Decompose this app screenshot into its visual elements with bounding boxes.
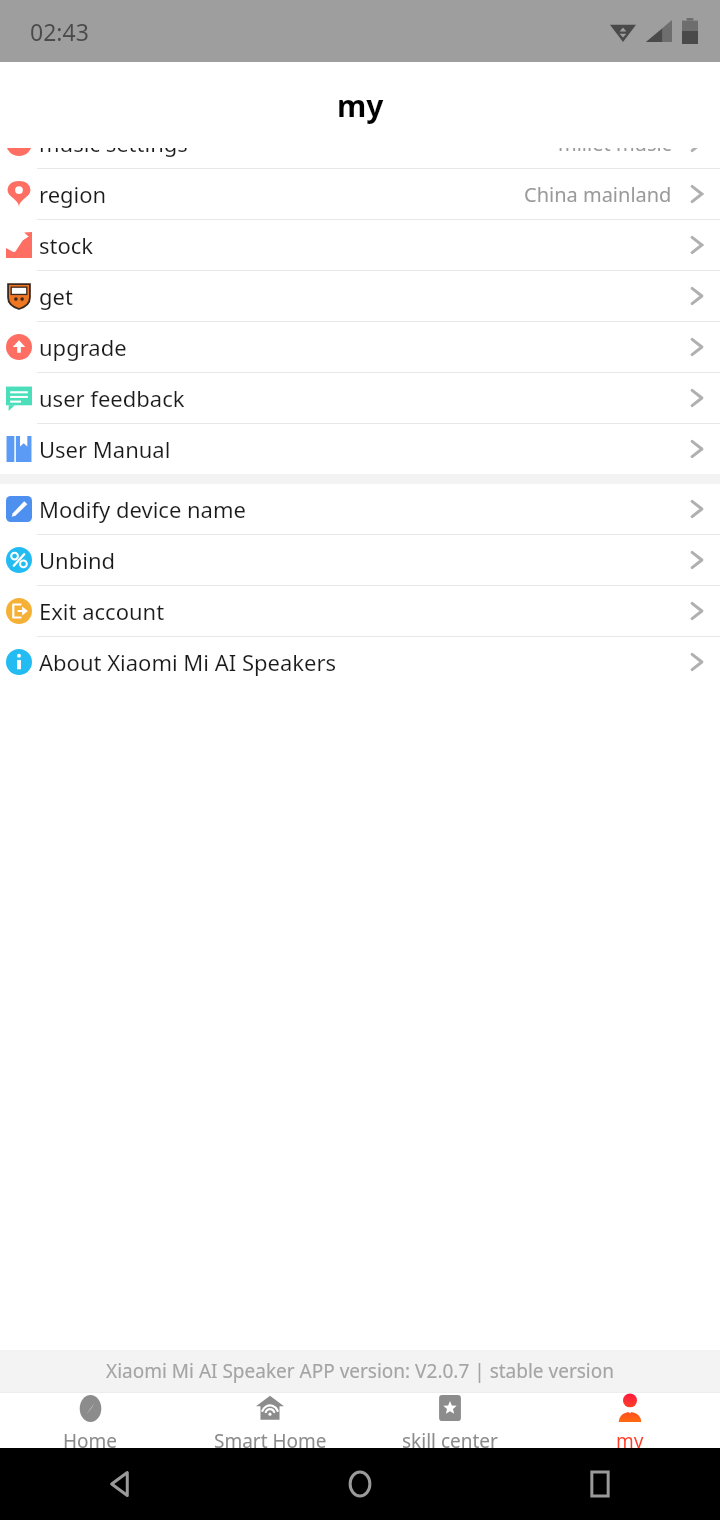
- staticText: my: [616, 1428, 644, 1448]
- button[interactable]: my: [540, 1393, 720, 1448]
- button[interactable]: Home: [240, 1448, 480, 1520]
- button[interactable]: upgrade: [0, 322, 720, 372]
- button[interactable]: About Xiaomi Mi AI Speakers: [0, 637, 720, 687]
- button[interactable]: Home: [0, 1393, 180, 1448]
- button[interactable]: music settings: [0, 118, 720, 168]
- staticText: region: [39, 179, 107, 209]
- staticText: Home: [63, 1428, 118, 1448]
- staticText: 02:43: [30, 16, 89, 47]
- staticText: my: [337, 85, 384, 126]
- staticText: millet music: [558, 130, 672, 157]
- staticText: get: [39, 281, 73, 311]
- staticText: skill center: [402, 1428, 498, 1448]
- staticText: China mainland: [524, 181, 672, 208]
- staticText: About Xiaomi Mi AI Speakers: [39, 647, 337, 677]
- staticText: music settings: [39, 128, 188, 158]
- button[interactable]: Back: [0, 1448, 240, 1520]
- button[interactable]: Smart Home: [180, 1393, 360, 1448]
- staticText: User Manual: [39, 434, 171, 464]
- staticText: Xiaomi Mi AI Speaker APP version: V2.0.7…: [106, 1358, 614, 1384]
- staticText: stock: [39, 230, 94, 260]
- button[interactable]: Exit account: [0, 586, 720, 636]
- staticText: Exit account: [39, 596, 165, 626]
- staticText: Modify device name: [39, 494, 246, 524]
- button[interactable]: get: [0, 271, 720, 321]
- button[interactable]: User Manual: [0, 424, 720, 474]
- button[interactable]: user feedback: [0, 373, 720, 423]
- staticText: Smart Home: [214, 1428, 327, 1448]
- button[interactable]: region: [0, 169, 720, 219]
- button[interactable]: Modify device name: [0, 484, 720, 534]
- button[interactable]: stock: [0, 220, 720, 270]
- staticText: user feedback: [39, 383, 185, 413]
- staticText: Unbind: [39, 545, 116, 575]
- button[interactable]: skill center: [360, 1393, 540, 1448]
- staticText: upgrade: [39, 332, 127, 362]
- button[interactable]: Unbind: [0, 535, 720, 585]
- button[interactable]: Recent apps: [480, 1448, 720, 1520]
